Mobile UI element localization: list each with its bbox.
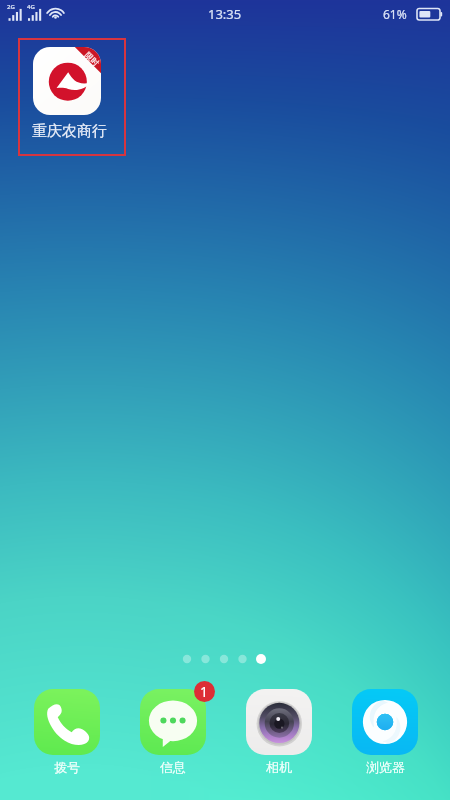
staticText: 重庆农商行 xyxy=(32,122,107,141)
staticText: 1 xyxy=(200,682,209,701)
staticText: 信息 xyxy=(160,759,186,775)
staticText: 浏览器 xyxy=(366,759,405,775)
button[interactable]: 拨号 xyxy=(34,689,100,779)
button[interactable]: 1 xyxy=(140,689,206,779)
staticText: 4G xyxy=(27,3,35,11)
staticText: 13:35 xyxy=(208,5,242,23)
button[interactable]: 重庆农商行 xyxy=(18,38,126,156)
staticText: 61% xyxy=(383,6,407,22)
button[interactable]: 相机 xyxy=(246,689,312,779)
staticText: 相机 xyxy=(266,759,292,775)
staticText: 2G xyxy=(7,3,15,11)
staticText: 限时 xyxy=(83,50,101,68)
staticText: 拨号 xyxy=(54,759,80,775)
button[interactable]: 浏览器 xyxy=(352,689,418,779)
